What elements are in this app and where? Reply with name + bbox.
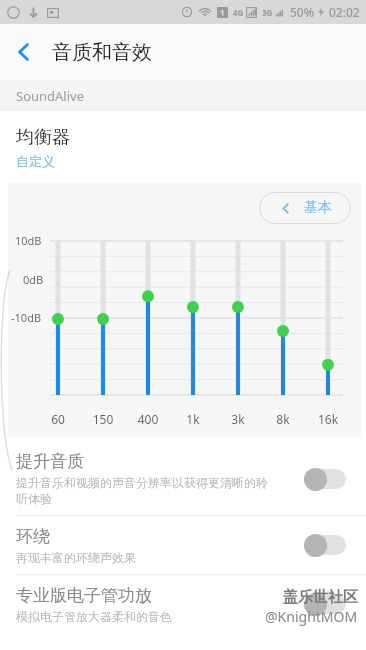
button[interactable]: Back	[0, 28, 48, 76]
staticText: 60	[38, 411, 78, 427]
staticText: 环绕	[16, 526, 50, 547]
staticText: 10dB	[15, 233, 42, 248]
button[interactable]: 提升音质	[0, 443, 366, 515]
staticText: SoundAlive	[16, 87, 85, 105]
staticText: 再现丰富的环绕声效果	[16, 550, 136, 565]
staticText: 模拟电子管放大器柔和的音色	[16, 609, 172, 624]
staticText: 4G	[233, 7, 244, 18]
staticText: 50%	[290, 4, 314, 20]
staticText: 1k	[173, 411, 213, 427]
staticText: 3G	[262, 7, 273, 18]
staticText: 提升音质	[16, 451, 84, 472]
button[interactable]: 基本	[259, 192, 351, 224]
staticText: 自定义	[16, 153, 55, 169]
button[interactable]: 环绕	[0, 516, 366, 574]
staticText: 基本	[304, 199, 332, 217]
staticText: 提升音乐和视频的声音分辨率以获得更清晰的聆 听体验	[16, 475, 269, 507]
staticText: 150	[83, 411, 123, 427]
button[interactable]: Toggle 提升音质	[304, 467, 348, 491]
staticText: 16k	[308, 411, 348, 427]
staticText: 盖乐世社区	[283, 588, 358, 607]
staticText: @KnightMOM	[265, 607, 358, 626]
staticText: 3k	[218, 411, 258, 427]
button[interactable]: Toggle 环绕	[304, 533, 348, 557]
staticText: 1	[220, 7, 225, 18]
staticText: 0dB	[23, 272, 44, 287]
staticText: 专业版电子管功放	[16, 585, 152, 606]
staticText: 音质和音效	[52, 40, 152, 65]
button[interactable]: 专业版电子管功放	[0, 575, 366, 633]
staticText: 02:02	[329, 4, 360, 20]
button[interactable]: 均衡器	[0, 111, 366, 183]
staticText: 400	[128, 411, 168, 427]
staticText: -10dB	[11, 310, 42, 325]
staticText: 8k	[263, 411, 303, 427]
button[interactable]: Toggle 专业版电子管功放	[304, 592, 348, 616]
staticText: 均衡器	[16, 126, 70, 149]
